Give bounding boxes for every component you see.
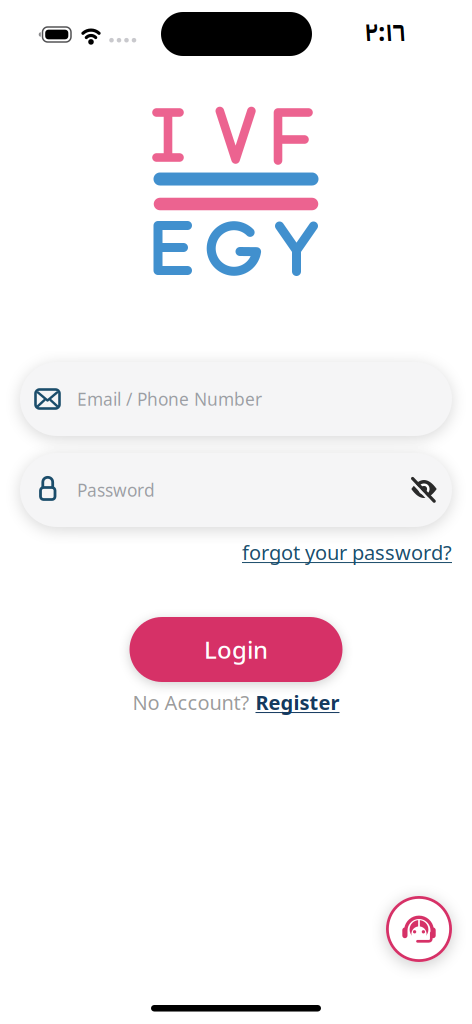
button[interactable]: Login [129,617,342,682]
staticText: Email / Phone Number [77,387,262,410]
button[interactable]: Email / Phone Number [20,362,452,436]
staticText: ٢:١٦ [364,12,406,52]
staticText: Register [255,689,339,716]
staticText: No Account? [132,689,249,716]
staticText: Password [77,478,155,501]
staticText: forgot your password? [242,539,452,566]
button[interactable]: Register [255,689,339,716]
staticText: Login [204,634,268,665]
button[interactable] [386,896,452,962]
button[interactable]: forgot your password? [20,539,452,566]
button[interactable] [0,0,472,1024]
button[interactable]: Password [20,453,452,527]
